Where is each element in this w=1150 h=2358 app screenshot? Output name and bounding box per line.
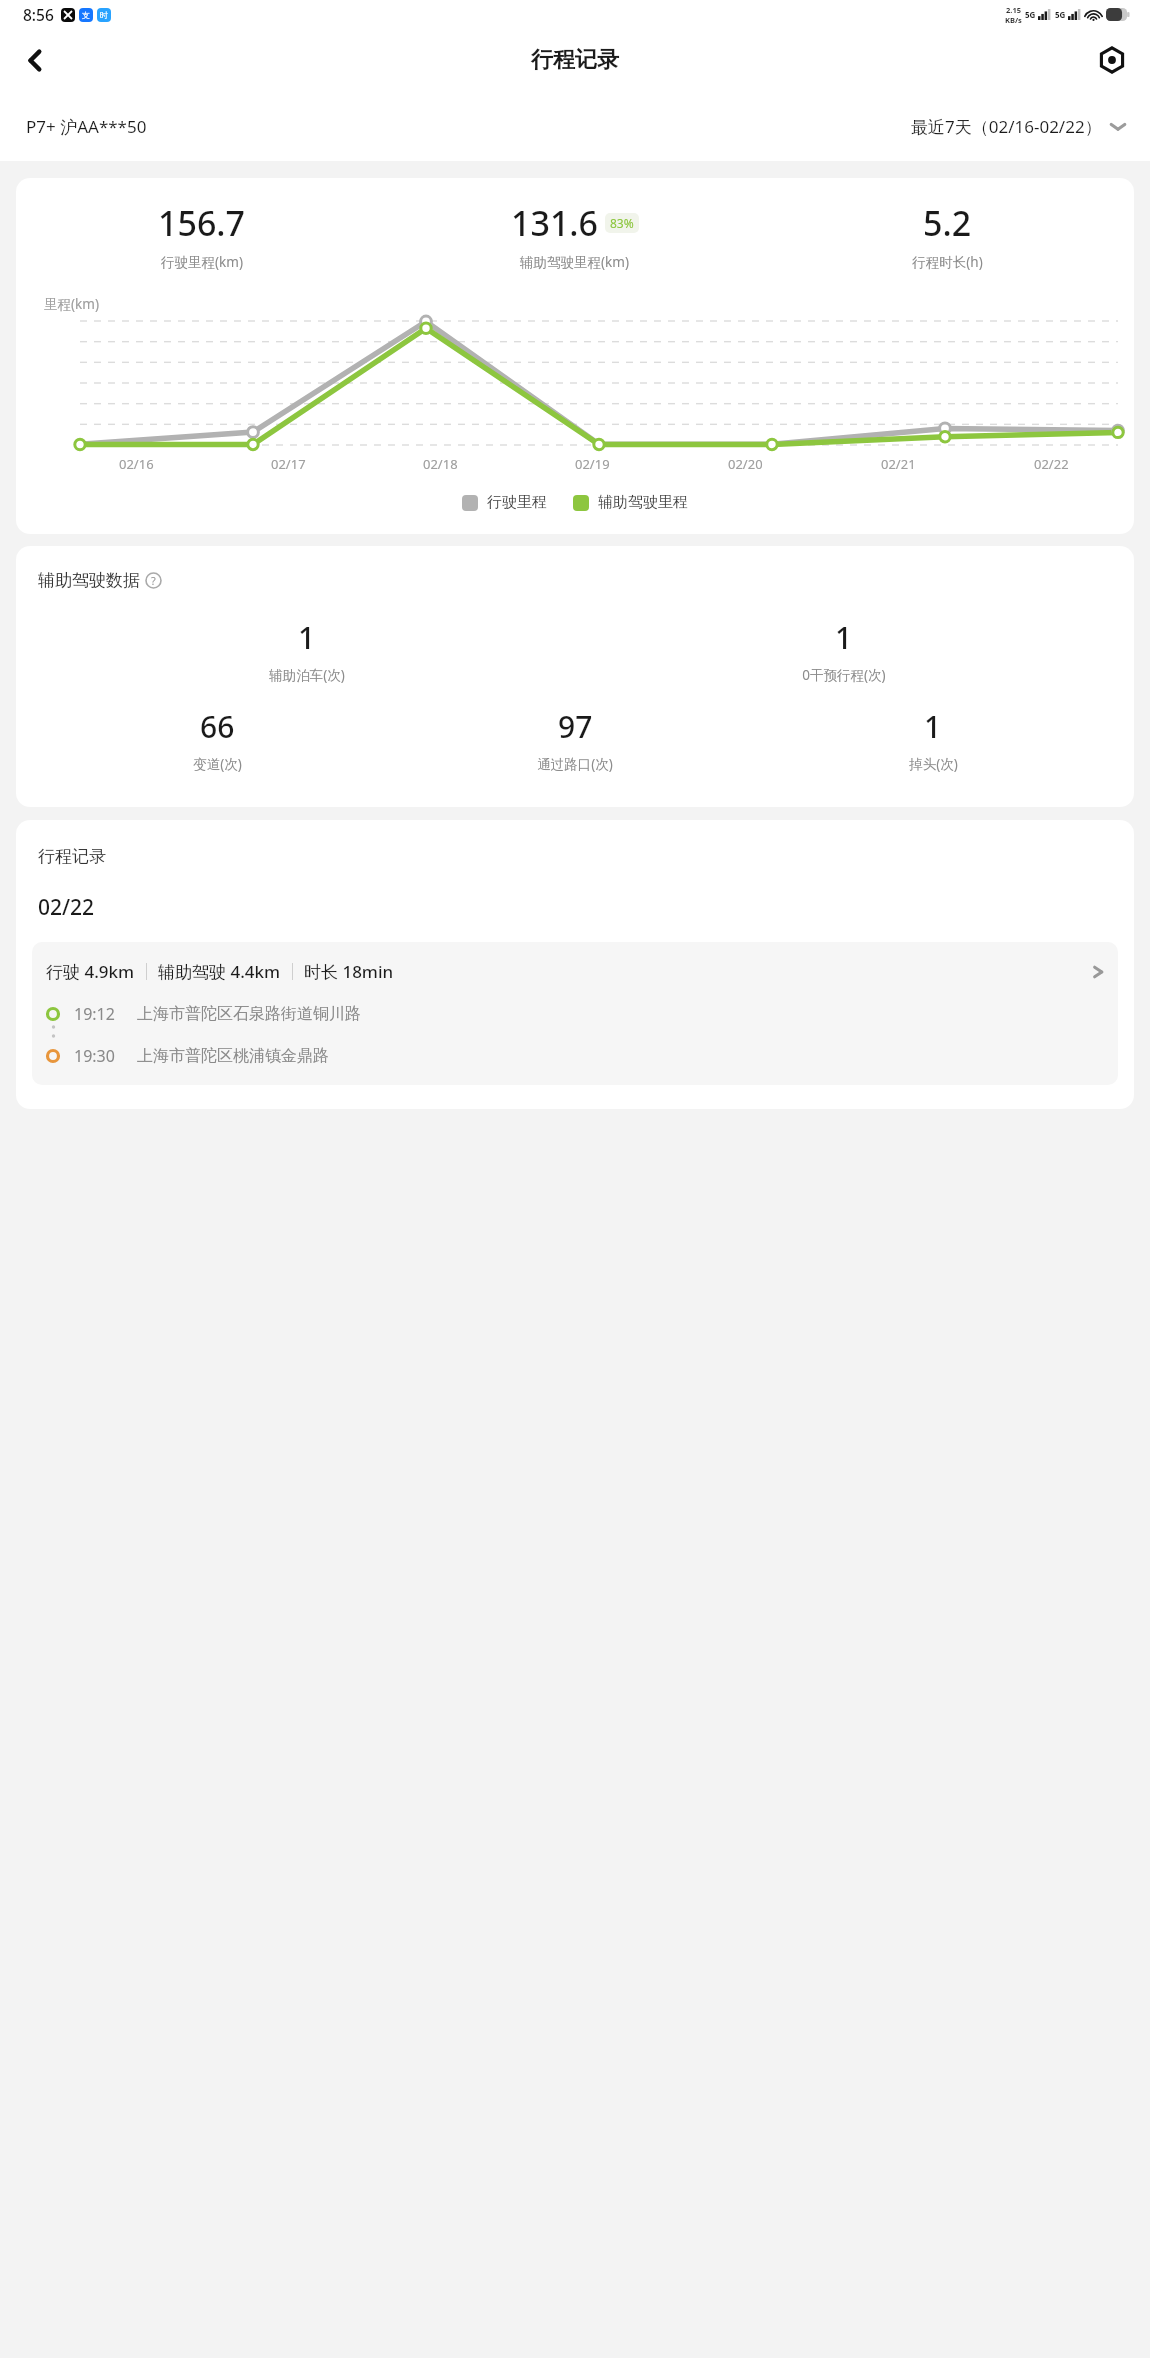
staticText: 8:56 bbox=[23, 4, 54, 25]
staticText: 辅助驾驶里程 bbox=[598, 493, 688, 512]
staticText: 83% bbox=[610, 215, 634, 231]
staticText: 辅助驾驶里程(km) bbox=[520, 253, 629, 271]
staticText: 行程时长(h) bbox=[912, 253, 983, 271]
staticText: 辅助驾驶数据 bbox=[38, 570, 140, 591]
staticText: 上海市普陀区石泉路街道铜川路 bbox=[137, 1004, 361, 1024]
staticText: 时长 18min bbox=[304, 960, 394, 983]
staticText: 最近7天（02/16-02/22） bbox=[911, 115, 1102, 138]
staticText: 时 bbox=[100, 10, 108, 20]
staticText: 上海市普陀区桃浦镇金鼎路 bbox=[137, 1046, 329, 1066]
staticText: 0干预行程(次) bbox=[802, 666, 886, 684]
staticText: 02/22 bbox=[1034, 455, 1069, 473]
staticText: 02/19 bbox=[575, 455, 610, 473]
staticText: 支 bbox=[82, 10, 90, 20]
staticText: 2.15 bbox=[1006, 5, 1021, 15]
staticText: 02/22 bbox=[38, 893, 95, 922]
staticText: 02/17 bbox=[271, 455, 306, 473]
staticText: ? bbox=[151, 573, 156, 588]
staticText: 1 bbox=[298, 617, 316, 658]
button[interactable]: 行驶 4.9km bbox=[32, 942, 1118, 1085]
button[interactable]: P7+ 沪AA***50 bbox=[26, 115, 147, 138]
staticText: 辅助泊车(次) bbox=[269, 666, 345, 684]
staticText: 97 bbox=[558, 706, 593, 747]
staticText: 行驶里程(km) bbox=[161, 253, 243, 271]
staticText: 19:12 bbox=[74, 1003, 115, 1025]
staticText: 通过路口(次) bbox=[537, 755, 613, 773]
staticText: 行程记录 bbox=[531, 46, 619, 74]
button[interactable]: 最近7天（02/16-02/22） bbox=[911, 115, 1126, 138]
staticText: 里程(km) bbox=[44, 295, 99, 313]
staticText: 156.7 bbox=[158, 200, 246, 246]
button[interactable]: Settings bbox=[1086, 34, 1138, 86]
staticText: 1 bbox=[924, 706, 942, 747]
staticText: KB/s bbox=[1005, 15, 1022, 25]
staticText: 行程记录 bbox=[38, 846, 106, 867]
staticText: 5.2 bbox=[923, 200, 972, 246]
button[interactable]: Help bbox=[144, 571, 163, 590]
staticText: 02/20 bbox=[728, 455, 763, 473]
staticText: 66 bbox=[200, 706, 235, 747]
staticText: 5G bbox=[1055, 9, 1066, 20]
staticText: 掉头(次) bbox=[909, 755, 958, 773]
staticText: 1 bbox=[835, 617, 853, 658]
staticText: 行驶里程 bbox=[487, 493, 547, 512]
staticText: P7+ 沪AA***50 bbox=[26, 115, 147, 138]
staticText: 变道(次) bbox=[193, 755, 242, 773]
staticText: 131.6 bbox=[511, 200, 599, 246]
staticText: 辅助驾驶 4.4km bbox=[158, 960, 281, 983]
staticText: 行驶 4.9km bbox=[46, 960, 135, 983]
staticText: 02/21 bbox=[881, 455, 916, 473]
staticText: 19:30 bbox=[74, 1045, 115, 1067]
staticText: 02/16 bbox=[119, 455, 154, 473]
button[interactable]: Back bbox=[8, 33, 62, 87]
staticText: 5G bbox=[1025, 9, 1036, 20]
staticText: 02/18 bbox=[423, 455, 458, 473]
